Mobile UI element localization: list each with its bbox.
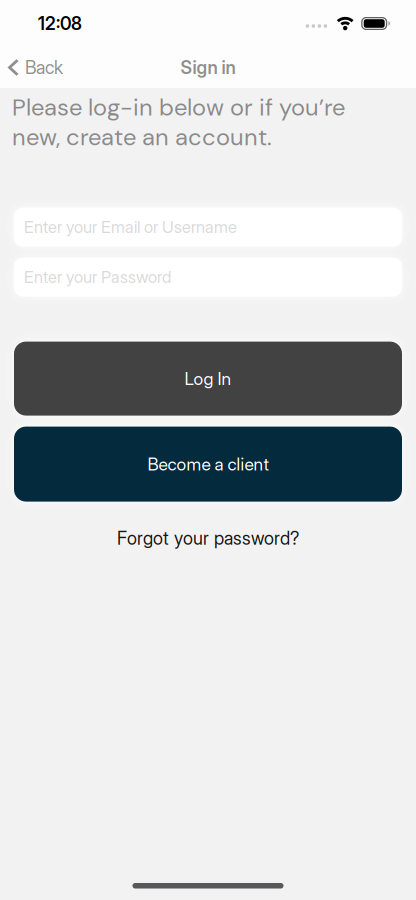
staticText: Log In (184, 368, 231, 389)
staticText: 12:08 (38, 13, 82, 34)
staticText: Back (25, 57, 63, 78)
button[interactable]: Log In (14, 342, 402, 416)
button[interactable]: Forgot your password? (117, 528, 299, 549)
button[interactable]: Back (0, 57, 63, 78)
staticText: Please log-in below or if you’re new, cr… (12, 93, 345, 152)
staticText: Enter your Password (24, 267, 171, 287)
staticText: Sign in (180, 57, 235, 78)
button[interactable]: Become a client (14, 427, 402, 502)
staticText: Enter your Email or Username (24, 217, 237, 237)
staticText: Become a client (147, 454, 268, 474)
staticText: Forgot your password? (117, 528, 299, 549)
